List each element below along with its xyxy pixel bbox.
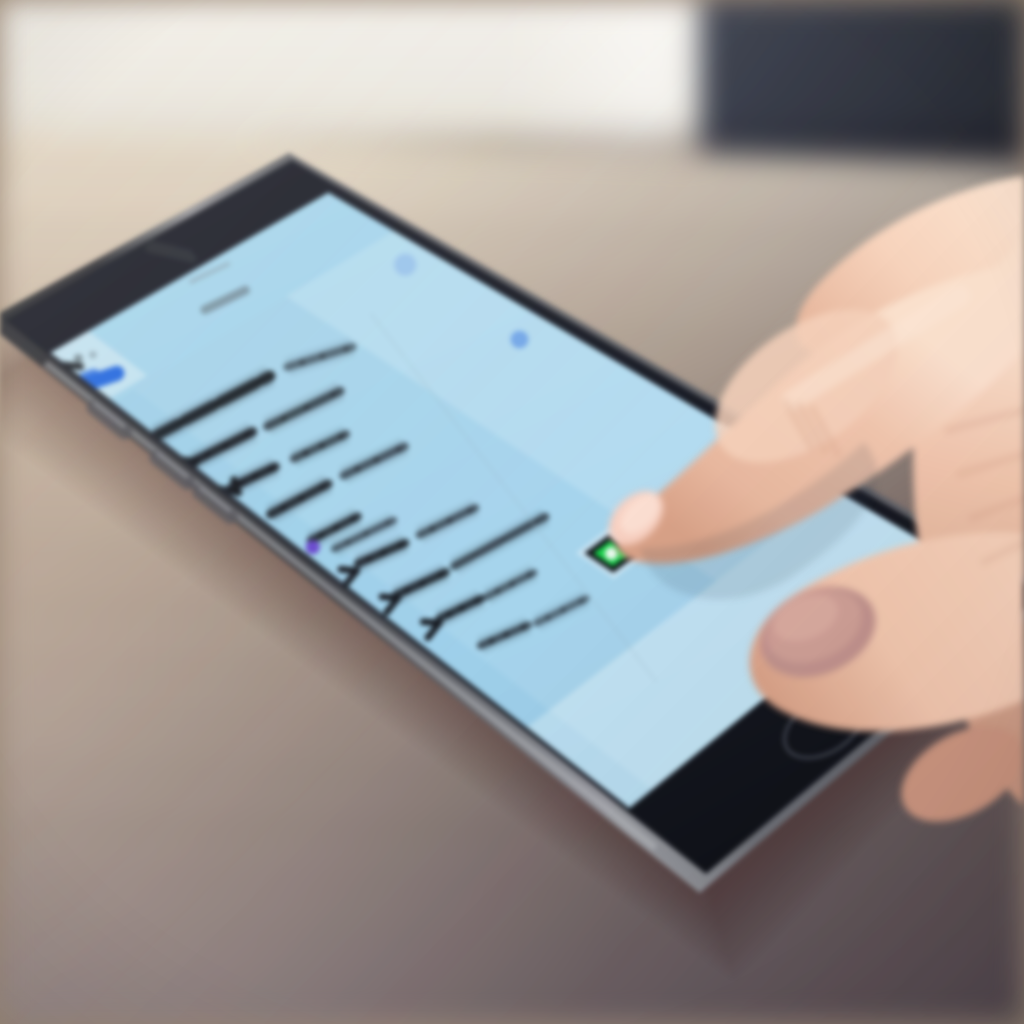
button[interactable]: Hand holding a phone over a desk — [0, 0, 1024, 1024]
